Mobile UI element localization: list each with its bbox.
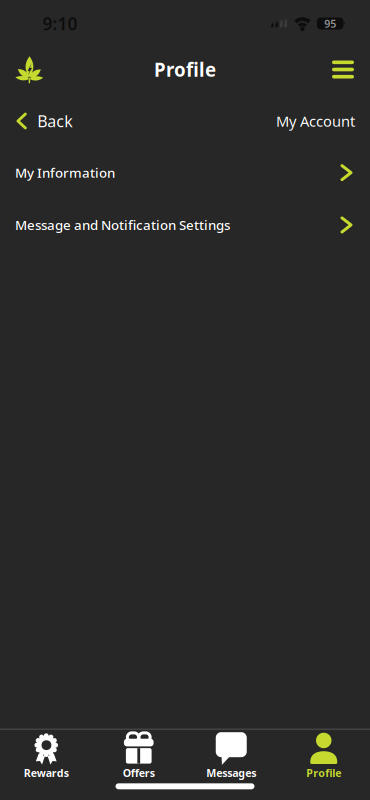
staticText: 9:10 [42, 12, 77, 35]
staticText: Messages [206, 766, 256, 780]
staticText: Profile [306, 766, 341, 780]
button[interactable]: Profile [277, 733, 370, 779]
button[interactable]: Back [0, 110, 73, 132]
button[interactable]: Rewards [0, 733, 92, 779]
staticText: Offers [123, 766, 155, 780]
button[interactable]: Messages [185, 733, 277, 779]
button[interactable]: My Information [0, 146, 370, 199]
staticText: Message and Notification Settings [15, 216, 230, 234]
staticText: Rewards [24, 766, 69, 780]
button[interactable]: Message and Notification Settings [0, 199, 370, 251]
staticText: 95 [324, 16, 336, 31]
staticText: Back [37, 110, 73, 132]
staticText: My Account [276, 111, 355, 131]
staticText: Profile [154, 57, 216, 82]
button[interactable]: Offers [92, 733, 185, 779]
button[interactable]: Menu [332, 60, 370, 78]
staticText: My Information [15, 164, 115, 181]
